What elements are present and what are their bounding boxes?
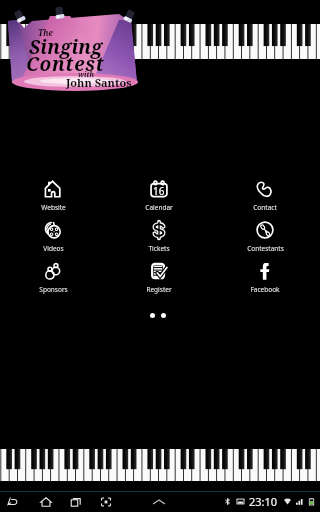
staticText: 23:10 [249, 494, 278, 509]
button[interactable]: Screenshot [95, 491, 117, 512]
button[interactable]: Home [35, 491, 57, 512]
button[interactable]: Contestants [229, 221, 301, 253]
button[interactable]: Recent apps [65, 491, 87, 512]
staticText: Contestants [247, 244, 284, 253]
staticText: Facebook [250, 285, 280, 294]
button[interactable]: Sponsors [17, 262, 89, 294]
staticText: Website [41, 203, 66, 212]
button[interactable]: Back [2, 491, 24, 512]
button[interactable]: Videos [17, 221, 89, 253]
staticText: Tickets [148, 244, 170, 253]
staticText: Calendar [145, 203, 173, 212]
button[interactable]: Register [123, 262, 195, 294]
staticText: Contest [26, 51, 105, 77]
button[interactable]: Facebook [229, 262, 301, 294]
staticText: Contact [253, 203, 277, 212]
button[interactable]: Website [17, 180, 89, 212]
button[interactable]: Notifications [148, 491, 170, 512]
staticText: Register [146, 285, 172, 294]
staticText: The [38, 27, 53, 38]
staticText: with [78, 70, 95, 80]
staticText: 16 [153, 184, 165, 198]
button[interactable]: Contact [229, 180, 301, 212]
staticText: Sponsors [39, 285, 68, 294]
button[interactable]: 16 [123, 180, 195, 212]
staticText: Videos [43, 244, 64, 253]
staticText: John Santos [66, 75, 132, 90]
button[interactable]: Tickets [123, 221, 195, 253]
staticText: Singing [29, 34, 103, 60]
